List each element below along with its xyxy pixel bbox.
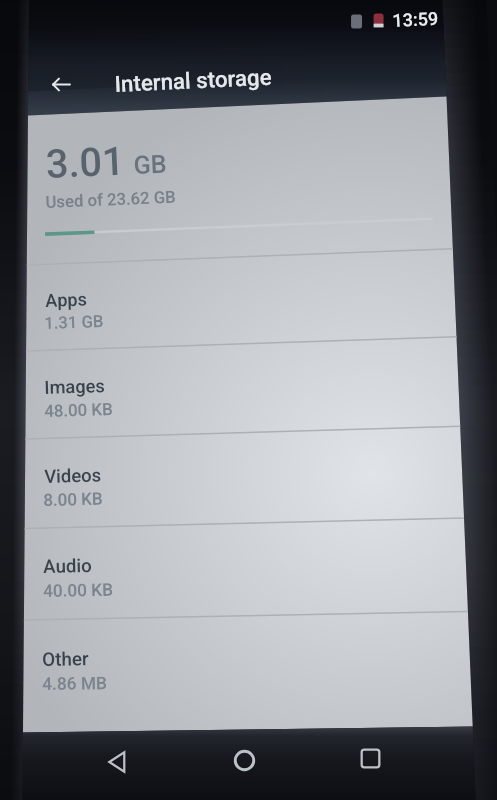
button[interactable]: Back [47, 70, 76, 99]
staticText: 13:59 [392, 8, 439, 31]
button[interactable] [25, 519, 457, 619]
staticText: Other [42, 648, 89, 671]
button[interactable]: Back [100, 744, 136, 780]
staticText: 48.00 KB [44, 399, 114, 421]
button[interactable] [24, 612, 460, 711]
button[interactable] [27, 249, 447, 353]
staticText: Videos [44, 464, 102, 488]
staticText: Internal storage [114, 64, 273, 97]
staticText: GB [133, 150, 168, 181]
button[interactable] [25, 427, 453, 528]
staticText: Used of 23.62 GB [45, 187, 177, 212]
staticText: Audio [43, 555, 92, 578]
staticText: 40.00 KB [43, 580, 113, 601]
button[interactable]: Recent apps [352, 740, 389, 777]
staticText: 3.01 [45, 138, 126, 187]
staticText: 1.31 GB [44, 312, 104, 334]
staticText: 8.00 KB [43, 488, 103, 510]
staticText: 4.86 MB [42, 673, 107, 694]
staticText: Images [44, 375, 106, 398]
staticText: Apps [45, 288, 88, 311]
button[interactable]: Home [226, 742, 263, 779]
button[interactable] [26, 337, 451, 440]
